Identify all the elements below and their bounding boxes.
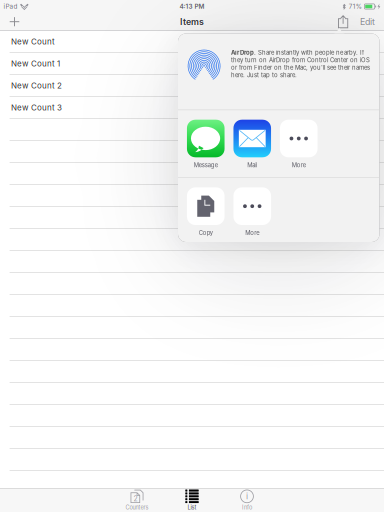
button[interactable]: New Count 1	[0, 53, 384, 75]
button[interactable]	[0, 273, 384, 295]
staticText: New Count 2	[11, 81, 62, 90]
button[interactable]	[0, 119, 384, 141]
button[interactable]	[0, 295, 384, 317]
button[interactable]	[0, 207, 384, 229]
staticText: AirDrop. Share instantly with people nea…	[231, 49, 370, 79]
staticText: Info	[242, 504, 252, 511]
button[interactable]	[0, 141, 384, 163]
button[interactable]	[0, 339, 384, 361]
staticText: Mail	[247, 161, 257, 169]
button[interactable]	[0, 449, 384, 471]
staticText: Copy	[199, 229, 213, 236]
staticText: List	[187, 504, 196, 511]
button[interactable]	[0, 405, 384, 427]
staticText: Items	[180, 16, 204, 27]
staticText: iPad	[3, 3, 17, 10]
button[interactable]: New Count 3	[0, 97, 384, 119]
button[interactable]: New Count	[0, 31, 384, 53]
button[interactable]: 2	[109, 489, 164, 512]
staticText: Edit	[360, 16, 375, 27]
button[interactable]: New Count 2	[0, 75, 384, 97]
button[interactable]: Share	[332, 14, 354, 30]
button[interactable]	[0, 383, 384, 405]
staticText: Message	[194, 161, 218, 169]
button[interactable]: Edit	[354, 13, 384, 30]
button[interactable]	[0, 361, 384, 383]
staticText: New Count 1	[11, 59, 60, 68]
button[interactable]	[0, 251, 384, 273]
staticText: More	[245, 229, 259, 236]
staticText: New Count 3	[11, 103, 62, 112]
staticText: i	[246, 491, 248, 501]
button[interactable]	[0, 163, 384, 185]
button[interactable]	[0, 317, 384, 339]
button[interactable]: List	[164, 489, 219, 512]
button[interactable]: i	[219, 489, 274, 512]
button[interactable]: Message	[182, 120, 229, 169]
button[interactable]: Copy	[182, 187, 229, 236]
button[interactable]: More	[229, 187, 275, 236]
staticText: More	[292, 161, 306, 169]
staticText: 71%	[349, 3, 362, 10]
staticText: 2	[133, 494, 137, 503]
button[interactable]	[0, 229, 384, 251]
staticText: New Count	[11, 37, 55, 46]
button[interactable]	[0, 427, 384, 449]
staticText: Counters	[125, 504, 148, 511]
button[interactable]: Add	[0, 13, 28, 30]
button[interactable]: Mail	[229, 120, 275, 169]
button[interactable]: More	[275, 120, 322, 169]
staticText: 4:13 PM	[179, 3, 204, 10]
button[interactable]	[0, 185, 384, 207]
